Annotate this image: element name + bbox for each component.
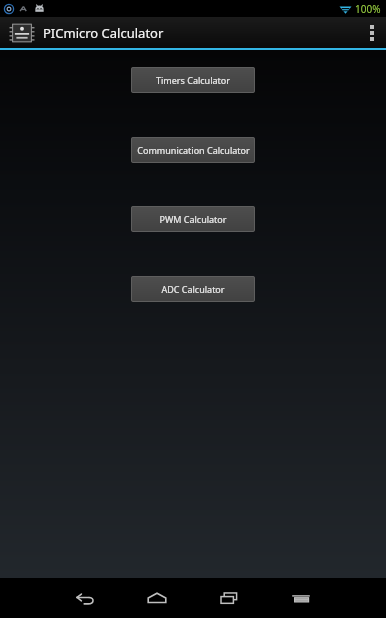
button[interactable]: Communication Calculator <box>131 137 255 163</box>
button[interactable]: ADC Calculator <box>131 276 255 302</box>
button[interactable]: PWM Calculator <box>131 206 255 232</box>
staticText: 100% <box>355 2 381 16</box>
staticText: ADC Calculator <box>161 283 225 295</box>
staticText: Timers Calculator <box>156 74 230 86</box>
button[interactable]: Home <box>134 578 180 618</box>
button[interactable]: Timers Calculator <box>131 67 255 93</box>
button[interactable]: Keyboard <box>278 578 324 618</box>
staticText: PICmicro Calculator <box>43 24 164 42</box>
button[interactable]: Back <box>62 578 108 618</box>
button[interactable]: Recent apps <box>206 578 252 618</box>
staticText: PWM Calculator <box>159 213 227 225</box>
staticText: Communication Calculator <box>137 144 250 156</box>
button[interactable]: More options <box>358 17 386 48</box>
